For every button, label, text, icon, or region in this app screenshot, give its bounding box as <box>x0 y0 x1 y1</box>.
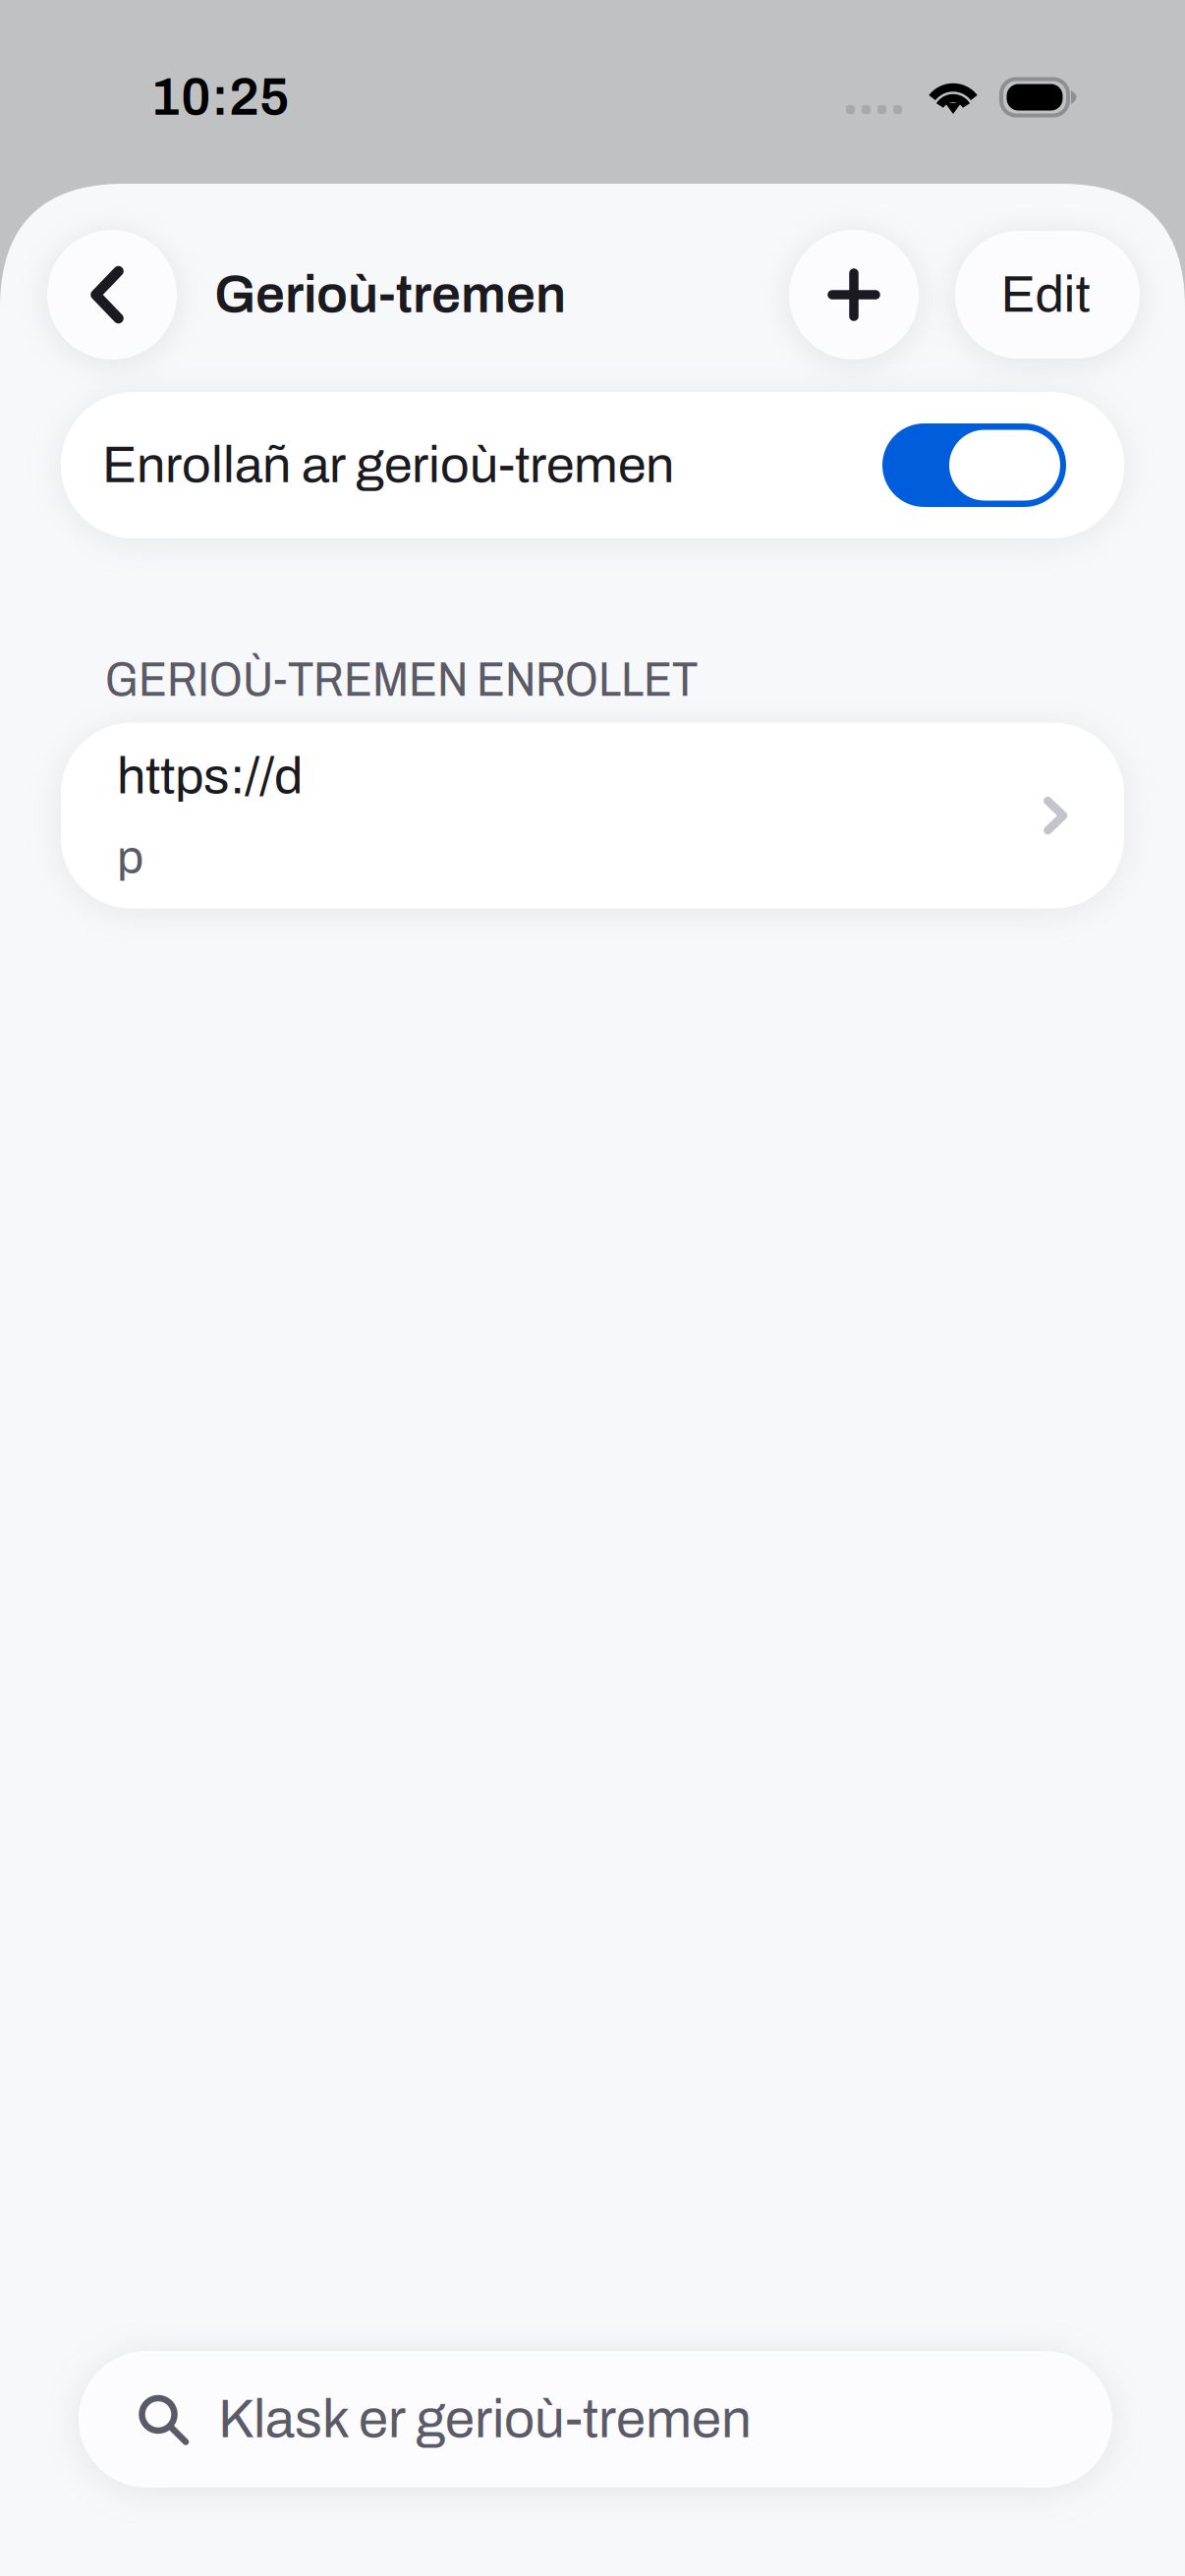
button[interactable]: Enrollañ ar gerioù-tremen <box>61 392 1124 538</box>
staticText: https://d <box>117 748 303 804</box>
staticText: Gerioù-tremen <box>214 266 566 323</box>
staticText: Edit <box>1001 267 1090 323</box>
staticText: Klask er gerioù-tremen <box>218 2390 752 2449</box>
staticText: p <box>117 832 143 883</box>
button[interactable]: Add password <box>789 230 919 360</box>
button[interactable]: Back <box>47 230 177 360</box>
staticText: Enrollañ ar gerioù-tremen <box>102 437 674 493</box>
button[interactable]: Klask er gerioù-tremen <box>79 2351 1112 2488</box>
button[interactable]: Edit <box>955 231 1140 359</box>
button[interactable]: https://d <box>61 723 1124 908</box>
staticText: 10:25 <box>150 69 290 126</box>
staticText: GERIOÙ-TREMEN ENROLLET <box>105 653 698 706</box>
